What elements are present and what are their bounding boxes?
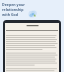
staticText: Deepen your relationship with God — [2, 2, 25, 17]
